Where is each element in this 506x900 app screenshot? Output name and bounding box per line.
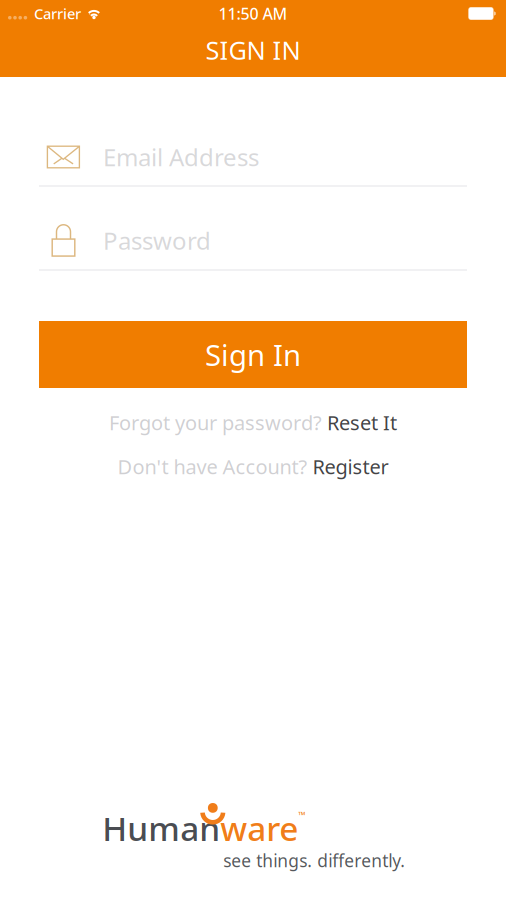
staticText: Reset It (327, 409, 397, 436)
staticText: SIGN IN (205, 33, 300, 67)
staticText: 11:50 AM (218, 3, 287, 24)
staticText: Don't have Account? (117, 453, 307, 480)
button[interactable]: Sign In (39, 321, 467, 388)
staticText: Human (102, 806, 220, 850)
staticText: ware (220, 806, 298, 850)
staticText: ™ (298, 809, 305, 821)
button[interactable]: Forgot your password? (39, 411, 467, 434)
staticText: Register (312, 453, 388, 480)
button[interactable]: Don't have Account? (39, 455, 467, 478)
staticText: Password (103, 225, 211, 256)
staticText: Email Address (103, 141, 259, 173)
staticText: Forgot your password? (109, 409, 322, 436)
staticText: Sign In (205, 335, 301, 374)
staticText: see things. differently. (223, 849, 405, 872)
staticText: Carrier (34, 4, 81, 23)
